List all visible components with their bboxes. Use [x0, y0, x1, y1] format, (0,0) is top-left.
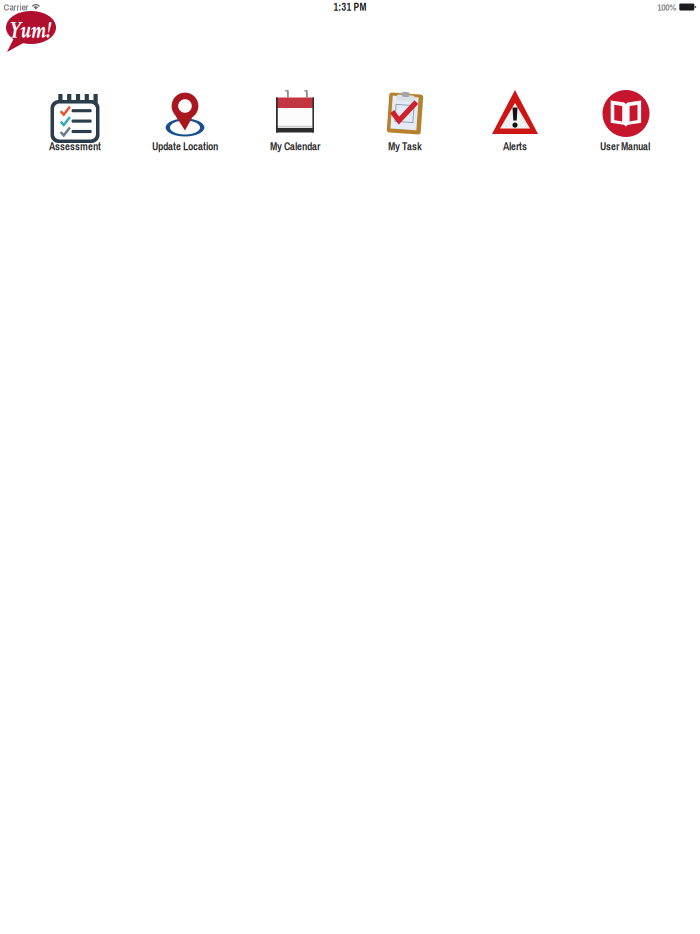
staticText: 1:31 PM: [333, 0, 366, 14]
staticText: Carrier: [3, 0, 28, 13]
staticText: 100%: [657, 0, 676, 13]
staticText: Yum!: [9, 14, 58, 46]
staticText: Assessment: [49, 139, 101, 154]
button[interactable]: Assessment: [20, 83, 130, 155]
button[interactable]: My Task: [350, 83, 460, 155]
staticText: My Calendar: [270, 139, 320, 154]
staticText: Alerts: [503, 139, 527, 154]
button[interactable]: User Manual: [570, 83, 680, 155]
staticText: My Task: [388, 139, 422, 154]
button[interactable]: Alerts: [460, 83, 570, 155]
button[interactable]: My Calendar: [240, 83, 350, 155]
staticText: Update Location: [152, 139, 218, 154]
button[interactable]: Update Location: [130, 83, 240, 155]
staticText: User Manual: [600, 139, 650, 154]
